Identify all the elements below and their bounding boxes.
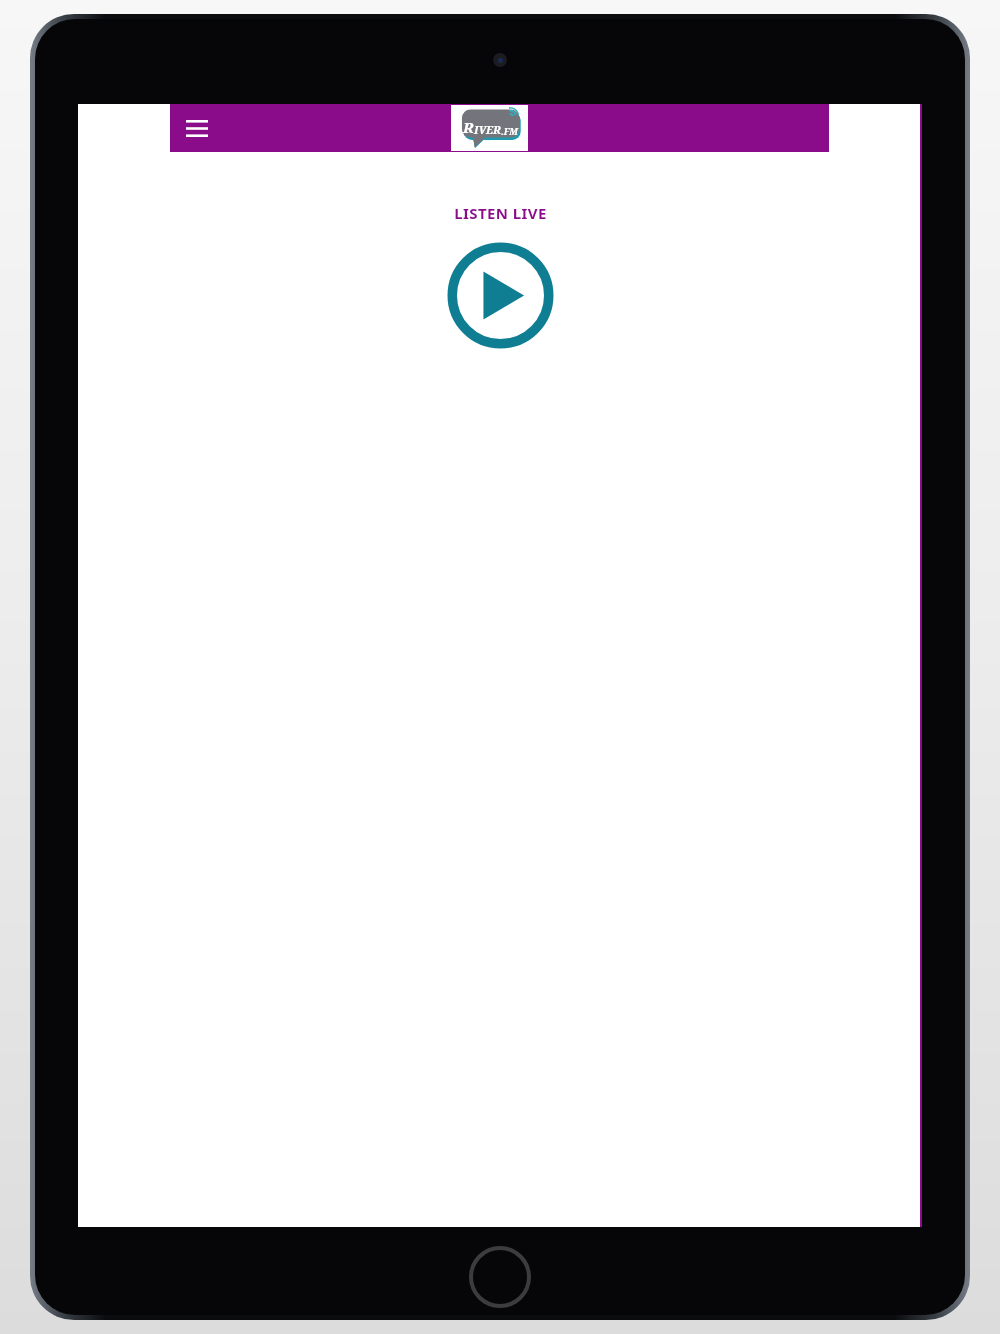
staticText: LISTEN LIVE xyxy=(454,203,547,223)
staticText: .FM xyxy=(501,125,518,137)
button[interactable]: River FM home xyxy=(451,105,528,151)
button[interactable]: Play live stream xyxy=(447,242,554,349)
button[interactable]: Home xyxy=(467,1244,533,1310)
staticText: IVER xyxy=(474,122,501,137)
staticText: R xyxy=(463,117,474,137)
button[interactable]: Open navigation menu xyxy=(178,109,216,147)
